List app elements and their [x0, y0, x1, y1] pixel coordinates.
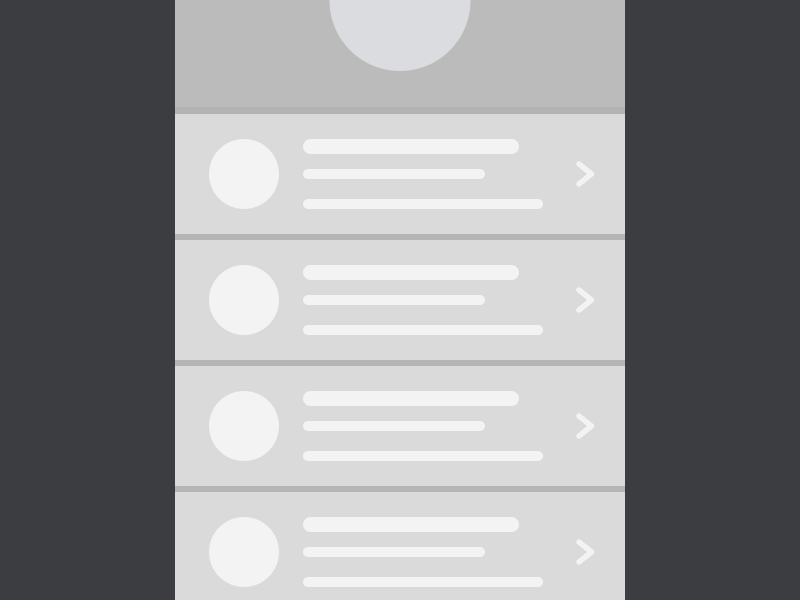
button[interactable]: Loading item: [175, 492, 625, 600]
button[interactable]: Loading item: [175, 114, 625, 234]
button[interactable]: Loading item: [175, 240, 625, 360]
button[interactable]: Loading item: [175, 366, 625, 486]
